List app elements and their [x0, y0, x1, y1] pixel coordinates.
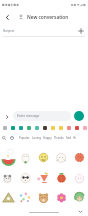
button[interactable]: Loving	[32, 136, 41, 140]
button[interactable]: Sticker 11	[0, 187, 17, 207]
button[interactable]: Search stickers	[0, 133, 8, 143]
button[interactable]: Back	[0, 10, 15, 25]
button[interactable]: Sticker pack 9	[65, 123, 73, 133]
staticText: Popular	[19, 136, 30, 140]
staticText: Hi	[73, 136, 76, 140]
button[interactable]: Sticker 9	[52, 167, 70, 187]
button[interactable]: Sticker pack 6	[41, 123, 49, 133]
button[interactable]: Sticker 12	[17, 187, 34, 207]
button[interactable]: Sticker pack 3	[17, 123, 25, 133]
button[interactable]: Sticker pack 8	[57, 123, 65, 133]
staticText: Thanks	[54, 136, 64, 140]
button[interactable]: Sticker pack 7	[49, 123, 57, 133]
button[interactable]: Sticker 15	[70, 187, 88, 207]
button[interactable]: Sticker 13	[34, 187, 52, 207]
button[interactable]: Send	[74, 111, 84, 121]
staticText: Sad	[66, 136, 71, 140]
staticText: New conversation	[27, 14, 69, 21]
staticText: Loving	[32, 136, 41, 140]
button[interactable]: Sticker pack 10	[73, 123, 81, 133]
button[interactable]: Sticker 4	[52, 147, 70, 167]
button[interactable]: Recent stickers	[8, 133, 16, 143]
button[interactable]: Enter message	[13, 111, 71, 121]
button[interactable]: Sticker pack 11	[81, 123, 88, 133]
staticText: Recipient	[3, 29, 15, 33]
button[interactable]: Sticker pack 2	[9, 123, 17, 133]
button[interactable]: Sticker 3	[34, 147, 52, 167]
button[interactable]: Collapse sticker panel	[76, 207, 85, 216]
button[interactable]: Sticker 6	[0, 167, 17, 187]
button[interactable]: Sticker 10	[70, 167, 88, 187]
button[interactable]: Sticker pack 1	[1, 123, 9, 133]
button[interactable]: Thanks	[54, 136, 64, 140]
button[interactable]: Add recipient	[75, 25, 86, 36]
button[interactable]: Hi	[73, 136, 76, 140]
button[interactable]: Sad	[66, 136, 71, 140]
button[interactable]: Sticker 8	[34, 167, 52, 187]
staticText: Happy	[43, 136, 52, 140]
button[interactable]: Sticker 5	[70, 147, 88, 167]
button[interactable]: Sticker pack 4	[25, 123, 33, 133]
button[interactable]: Sticker 1	[0, 147, 17, 167]
staticText: Enter message	[17, 114, 40, 118]
button[interactable]: Show more options	[0, 110, 13, 123]
button[interactable]: Sticker 7	[17, 167, 34, 187]
button[interactable]: Popular	[19, 136, 30, 140]
button[interactable]: Sticker 2	[17, 147, 34, 167]
button[interactable]: Happy	[43, 136, 52, 140]
button[interactable]: Sticker 14	[52, 187, 70, 207]
button[interactable]: Sticker pack 5	[33, 123, 41, 133]
